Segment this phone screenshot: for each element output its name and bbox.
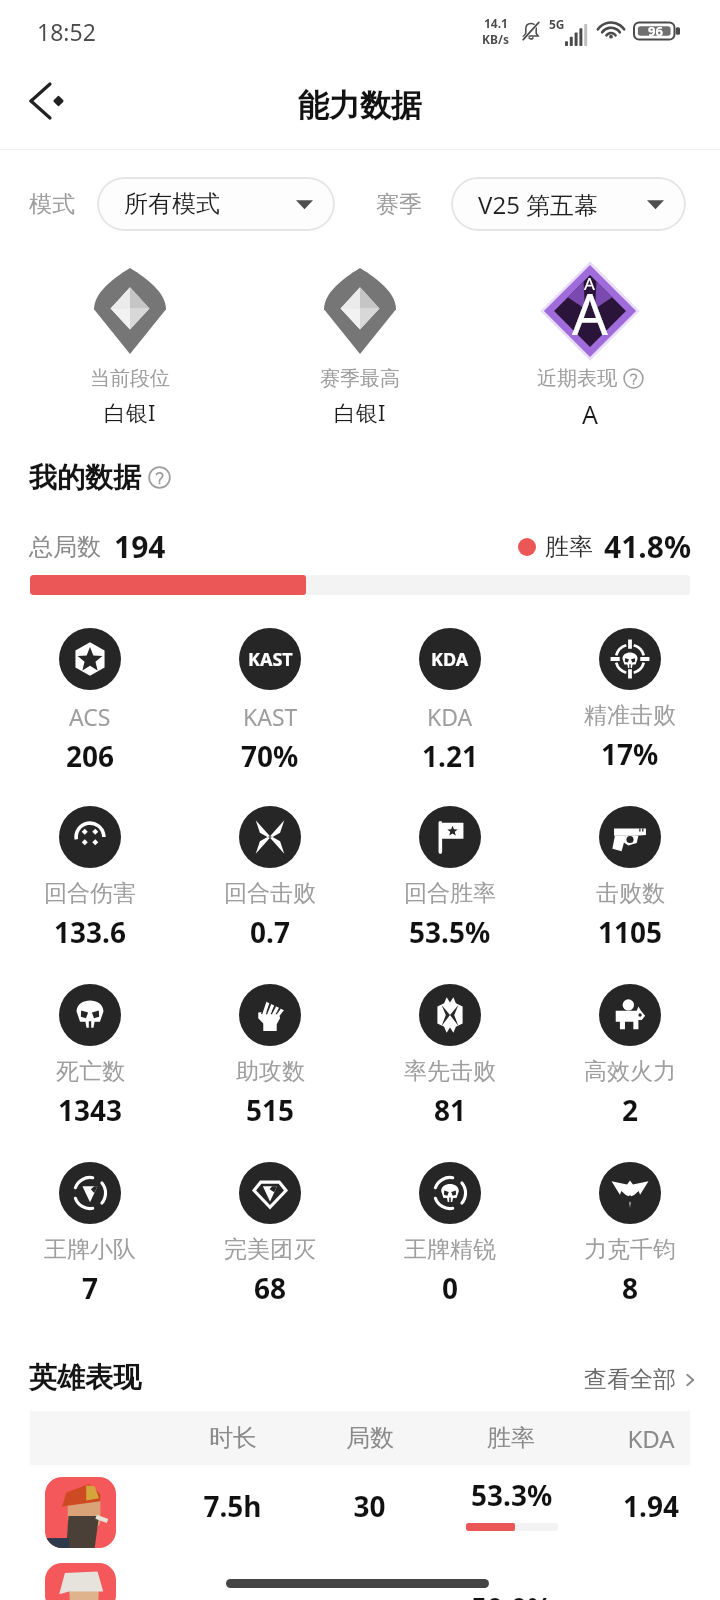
button[interactable]: 王牌精锐: [360, 1162, 540, 1307]
staticText: 5G: [549, 16, 565, 32]
staticText: 近期表现: [537, 366, 617, 391]
staticText: 完美团灭: [224, 1235, 316, 1264]
staticText: A: [572, 275, 608, 351]
staticText: 70%: [241, 737, 299, 775]
staticText: 击败数: [596, 879, 665, 908]
staticText: 我的数据: [29, 460, 141, 495]
staticText: 助攻数: [236, 1057, 305, 1086]
staticText: 赛季最高: [320, 366, 400, 391]
staticText: 模式: [29, 190, 75, 219]
button[interactable]: 所有模式: [97, 177, 335, 231]
staticText: A: [582, 397, 598, 431]
staticText: 18:52: [37, 16, 96, 47]
staticText: 回合胜率: [404, 879, 496, 908]
button[interactable]: 助攻数: [180, 984, 360, 1129]
button[interactable]: 力克千钧: [540, 1162, 720, 1307]
staticText: 局数: [346, 1423, 394, 1453]
staticText: 81: [434, 1091, 467, 1129]
staticText: KDA: [431, 647, 469, 672]
button[interactable]: 击败数: [540, 806, 720, 951]
button[interactable]: 死亡数: [0, 984, 180, 1129]
staticText: 133.6: [54, 913, 126, 951]
staticText: 总局数: [29, 532, 101, 562]
staticText: 41.8%: [604, 526, 691, 567]
staticText: 死亡数: [56, 1057, 125, 1086]
staticText: 30: [353, 1487, 386, 1525]
button[interactable]: 回合击败: [180, 806, 360, 951]
staticText: 0: [442, 1269, 459, 1307]
button[interactable]: 回合胜率: [360, 806, 540, 951]
staticText: 王牌精锐: [404, 1235, 496, 1264]
staticText: 高效火力: [584, 1057, 676, 1086]
staticText: 17%: [601, 735, 659, 773]
staticText: A: [584, 272, 595, 295]
button[interactable]: Back: [18, 72, 76, 130]
staticText: 2: [622, 1091, 639, 1129]
staticText: 68: [254, 1269, 287, 1307]
staticText: 率先击败: [404, 1057, 496, 1086]
button[interactable]: 回合伤害: [0, 806, 180, 951]
staticText: 胜率: [487, 1423, 535, 1453]
staticText: 胜率: [545, 532, 593, 562]
staticText: KAST: [243, 701, 298, 732]
staticText: KAST: [248, 647, 293, 672]
staticText: 194: [114, 526, 166, 567]
staticText: 14.1: [484, 15, 508, 31]
staticText: 能力数据: [298, 86, 422, 125]
staticText: 0.7: [250, 913, 290, 951]
staticText: 当前段位: [90, 366, 170, 391]
staticText: 查看全部: [584, 1365, 676, 1394]
staticText: 53.3%: [471, 1476, 553, 1514]
button[interactable]: 精准击败: [540, 628, 720, 773]
button[interactable]: 当前段位: [15, 262, 245, 427]
staticText: 英雄表现: [29, 1360, 141, 1395]
staticText: 53.5%: [409, 913, 491, 951]
staticText: 1343: [58, 1091, 123, 1129]
staticText: KDA: [627, 1422, 675, 1455]
button[interactable]: V25 第五幕: [451, 177, 686, 231]
staticText: 515: [246, 1091, 295, 1129]
staticText: V25 第五幕: [478, 188, 599, 221]
staticText: 王牌小队: [44, 1235, 136, 1264]
staticText: 206: [66, 737, 115, 775]
button[interactable]: 完美团灭: [180, 1162, 360, 1307]
button[interactable]: [45, 1477, 116, 1548]
button[interactable]: 率先击败: [360, 984, 540, 1129]
staticText: 1.21: [422, 737, 478, 775]
button[interactable]: 赛季最高: [245, 262, 475, 427]
button[interactable]: A: [475, 262, 705, 431]
staticText: 50.0%: [471, 1589, 553, 1600]
staticText: 所有模式: [124, 189, 220, 219]
staticText: 力克千钧: [584, 1235, 676, 1264]
staticText: 回合击败: [224, 879, 316, 908]
button[interactable]: 王牌小队: [0, 1162, 180, 1307]
staticText: 赛季: [376, 190, 422, 219]
staticText: 1105: [598, 913, 663, 951]
button[interactable]: ACS: [0, 628, 180, 775]
staticText: 7: [82, 1269, 99, 1307]
button[interactable]: KDA: [360, 628, 540, 775]
button[interactable]: [45, 1563, 116, 1600]
staticText: 时长: [209, 1423, 257, 1453]
staticText: 96: [648, 22, 663, 40]
staticText: 1.94: [623, 1487, 679, 1525]
staticText: 8: [622, 1269, 639, 1307]
staticText: 回合伤害: [44, 879, 136, 908]
staticText: 7.5h: [203, 1487, 262, 1525]
staticText: ACS: [69, 701, 111, 732]
button[interactable]: 高效火力: [540, 984, 720, 1129]
button[interactable]: KAST: [180, 628, 360, 775]
staticText: KB/s: [482, 31, 509, 47]
staticText: KDA: [427, 701, 473, 732]
button[interactable]: 查看全部: [584, 1365, 700, 1394]
staticText: 白银I: [334, 397, 386, 427]
staticText: 白银I: [104, 397, 156, 427]
staticText: 精准击败: [584, 701, 676, 730]
